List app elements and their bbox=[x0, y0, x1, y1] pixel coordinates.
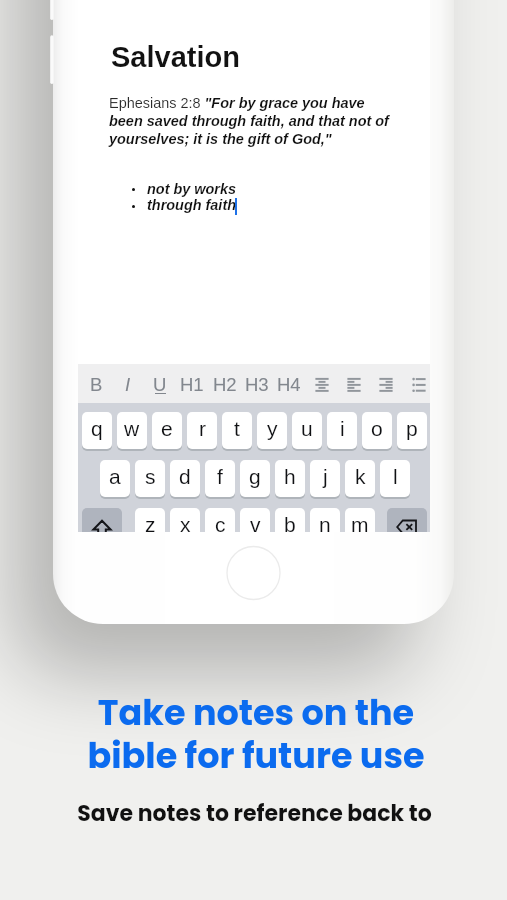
button[interactable]: H2 bbox=[209, 364, 241, 403]
staticText: q bbox=[91, 417, 103, 440]
button[interactable]: Align center bbox=[306, 364, 338, 403]
staticText: d bbox=[179, 465, 191, 488]
staticText: r bbox=[199, 417, 206, 440]
button[interactable]: c bbox=[205, 508, 235, 532]
staticText: Save notes to reference back to bbox=[77, 798, 432, 829]
button[interactable]: z bbox=[135, 508, 165, 532]
button[interactable]: b bbox=[275, 508, 305, 532]
button[interactable]: y bbox=[257, 412, 287, 449]
staticText: z bbox=[145, 513, 156, 532]
staticText: b bbox=[284, 513, 296, 532]
staticText: through faith bbox=[147, 197, 237, 213]
button[interactable]: k bbox=[345, 460, 375, 497]
button[interactable]: u bbox=[292, 412, 322, 449]
button[interactable]: q bbox=[82, 412, 112, 449]
staticText: m bbox=[351, 513, 369, 532]
staticText: c bbox=[215, 513, 226, 532]
staticText: Take notes on the bible for future use bbox=[87, 688, 425, 780]
staticText: g bbox=[249, 465, 261, 488]
staticText: i bbox=[340, 417, 345, 440]
staticText: k bbox=[355, 465, 366, 488]
staticText: j bbox=[323, 465, 328, 488]
staticText: f bbox=[217, 465, 223, 488]
button[interactable]: Align right bbox=[370, 364, 402, 403]
button[interactable]: h bbox=[275, 460, 305, 497]
button[interactable]: Shift bbox=[82, 508, 122, 532]
button[interactable]: I bbox=[112, 364, 144, 403]
staticText: Ephesians 2:8 "For by grace you have bee… bbox=[109, 95, 395, 147]
button[interactable]: H3 bbox=[241, 364, 273, 403]
staticText: e bbox=[161, 417, 173, 440]
staticText: p bbox=[406, 417, 418, 440]
button[interactable]: o bbox=[362, 412, 392, 449]
button[interactable]: Backspace bbox=[387, 508, 427, 532]
button[interactable]: a bbox=[100, 460, 130, 497]
button[interactable]: j bbox=[310, 460, 340, 497]
button[interactable]: x bbox=[170, 508, 200, 532]
staticText: not by works bbox=[147, 181, 237, 197]
button[interactable]: d bbox=[170, 460, 200, 497]
button[interactable]: Align left bbox=[338, 364, 370, 403]
staticText: I bbox=[125, 374, 131, 395]
button[interactable]: p bbox=[397, 412, 427, 449]
button[interactable]: s bbox=[135, 460, 165, 497]
staticText: h bbox=[284, 465, 296, 488]
button[interactable]: v bbox=[240, 508, 270, 532]
staticText: U bbox=[153, 374, 167, 395]
staticText: w bbox=[124, 417, 140, 440]
button[interactable]: U bbox=[144, 364, 176, 403]
button[interactable]: m bbox=[345, 508, 375, 532]
staticText: y bbox=[267, 417, 278, 440]
button[interactable]: H4 bbox=[273, 364, 305, 403]
button[interactable]: i bbox=[327, 412, 357, 449]
staticText: H4 bbox=[277, 374, 301, 395]
button[interactable]: e bbox=[152, 412, 182, 449]
staticText: v bbox=[250, 513, 261, 532]
staticText: B bbox=[90, 374, 103, 395]
button[interactable]: l bbox=[380, 460, 410, 497]
button[interactable]: t bbox=[222, 412, 252, 449]
button[interactable]: g bbox=[240, 460, 270, 497]
staticText: t bbox=[234, 417, 240, 440]
button[interactable]: n bbox=[310, 508, 340, 532]
button[interactable]: f bbox=[205, 460, 235, 497]
staticText: Salvation bbox=[111, 41, 240, 73]
staticText: H1 bbox=[180, 374, 204, 395]
button[interactable]: H1 bbox=[176, 364, 208, 403]
staticText: H2 bbox=[213, 374, 237, 395]
staticText: o bbox=[371, 417, 383, 440]
staticText: u bbox=[301, 417, 313, 440]
staticText: n bbox=[319, 513, 331, 532]
staticText: x bbox=[180, 513, 191, 532]
button[interactable]: Bulleted list bbox=[403, 364, 430, 403]
staticText: a bbox=[109, 465, 121, 488]
button[interactable]: B bbox=[80, 364, 112, 403]
staticText: H3 bbox=[245, 374, 269, 395]
staticText: l bbox=[393, 465, 398, 488]
button[interactable]: w bbox=[117, 412, 147, 449]
button[interactable]: r bbox=[187, 412, 217, 449]
staticText: s bbox=[145, 465, 156, 488]
